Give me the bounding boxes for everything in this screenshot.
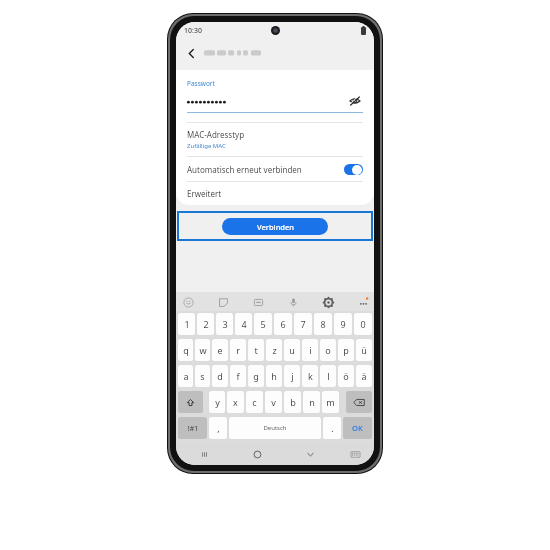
button[interactable]: k [302,365,318,387]
button[interactable]: Verbinden [177,211,373,241]
button[interactable]: Weitere Optionen [355,294,371,310]
button[interactable]: Spracheingabe [285,294,301,310]
button[interactable]: ö [338,365,354,387]
button[interactable]: l [320,365,336,387]
staticText: Automatisch erneut verbinden [187,164,344,175]
button[interactable]: Tastatur wechseln [347,446,363,462]
button[interactable]: 4 [235,313,252,335]
button[interactable]: v [265,391,282,413]
button[interactable]: h [266,365,282,387]
staticText: r [236,344,240,356]
button[interactable]: , [209,417,227,439]
button[interactable]: i [302,339,318,361]
button[interactable]: Einstellungen [320,294,336,310]
button[interactable]: . [323,417,341,439]
button[interactable]: m [322,391,339,413]
staticText: 9 [340,318,346,330]
button[interactable]: Passwort anzeigen [346,93,363,108]
button[interactable]: Sticker [215,294,231,310]
button[interactable]: GIF [250,294,266,310]
button[interactable]: Zurück [181,43,201,63]
staticText: ü [361,344,367,356]
staticText: Verbinden [257,222,294,232]
staticText: h [271,370,277,382]
button[interactable]: 0 [354,313,372,335]
staticText: n [309,396,315,408]
staticText: q [183,344,189,356]
staticText: m [326,396,335,408]
button[interactable]: MAC-Adresstyp [176,123,374,156]
button[interactable]: q [178,339,193,361]
staticText: a [183,370,189,382]
button[interactable]: j [284,365,300,387]
button[interactable]: Emoji [180,294,196,310]
button[interactable]: Tastatur ausblenden [301,445,319,463]
button[interactable]: Löschen [346,391,372,413]
staticText: OK [352,423,363,433]
staticText: o [325,344,331,356]
button[interactable]: w [195,339,210,361]
button[interactable]: Umschalten [178,391,203,413]
button[interactable]: z [266,339,282,361]
staticText: ö [343,370,349,382]
staticText: MAC-Adresstyp [187,129,245,140]
staticText: u [289,344,295,356]
button[interactable]: c [246,391,263,413]
staticText: y [215,396,220,408]
button[interactable]: 8 [314,313,332,335]
button[interactable]: e [212,339,228,361]
staticText: i [309,344,312,356]
button[interactable]: 9 [334,313,352,335]
button[interactable]: o [320,339,336,361]
button[interactable]: 5 [254,313,272,335]
button[interactable]: Startbildschirm [248,445,266,463]
staticText: z [272,344,277,356]
button[interactable]: 1 [178,313,195,335]
button[interactable]: Deutsch [229,417,321,439]
staticText: Passwort [187,79,215,88]
button[interactable]: !#1 [178,417,207,439]
staticText: g [253,370,259,382]
staticText: 8 [320,318,326,330]
button[interactable]: Automatisch erneut verbinden [176,157,374,181]
staticText: . [331,422,334,434]
button[interactable]: Automatisch erneut verbinden [344,164,363,175]
button[interactable]: f [230,365,246,387]
button[interactable]: x [227,391,244,413]
staticText: 4 [241,318,247,330]
button[interactable]: ä [356,365,372,387]
button[interactable]: Erweitert [176,182,374,205]
button[interactable]: n [303,391,320,413]
staticText: 7 [300,318,306,330]
button[interactable]: 7 [294,313,312,335]
staticText: 6 [280,318,286,330]
button[interactable]: 3 [216,313,233,335]
button[interactable]: 2 [197,313,214,335]
button[interactable]: a [178,365,193,387]
staticText: 3 [222,318,228,330]
button[interactable]: b [284,391,301,413]
button[interactable]: s [195,365,210,387]
staticText: Deutsch [263,424,287,432]
button[interactable]: p [338,339,354,361]
staticText: 0 [360,318,366,330]
button[interactable]: ü [356,339,372,361]
staticText: v [271,396,276,408]
staticText: d [217,370,223,382]
button[interactable]: g [248,365,264,387]
staticText: 10:30 [184,26,202,36]
staticText: !#1 [187,423,199,433]
button[interactable]: u [284,339,300,361]
button[interactable]: d [212,365,228,387]
staticText: c [252,396,257,408]
staticText: Erweitert [187,188,222,199]
button[interactable]: y [209,391,225,413]
button[interactable]: 6 [274,313,292,335]
staticText: f [236,370,240,382]
button[interactable]: r [230,339,246,361]
button[interactable]: Letzte Apps [195,445,213,463]
button[interactable]: OK [343,417,372,439]
button[interactable]: t [248,339,264,361]
staticText: , [217,422,220,434]
staticText: 2 [203,318,209,330]
